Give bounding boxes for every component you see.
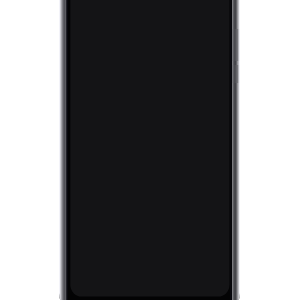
other: Android phone, screen off bbox=[0, 0, 300, 300]
